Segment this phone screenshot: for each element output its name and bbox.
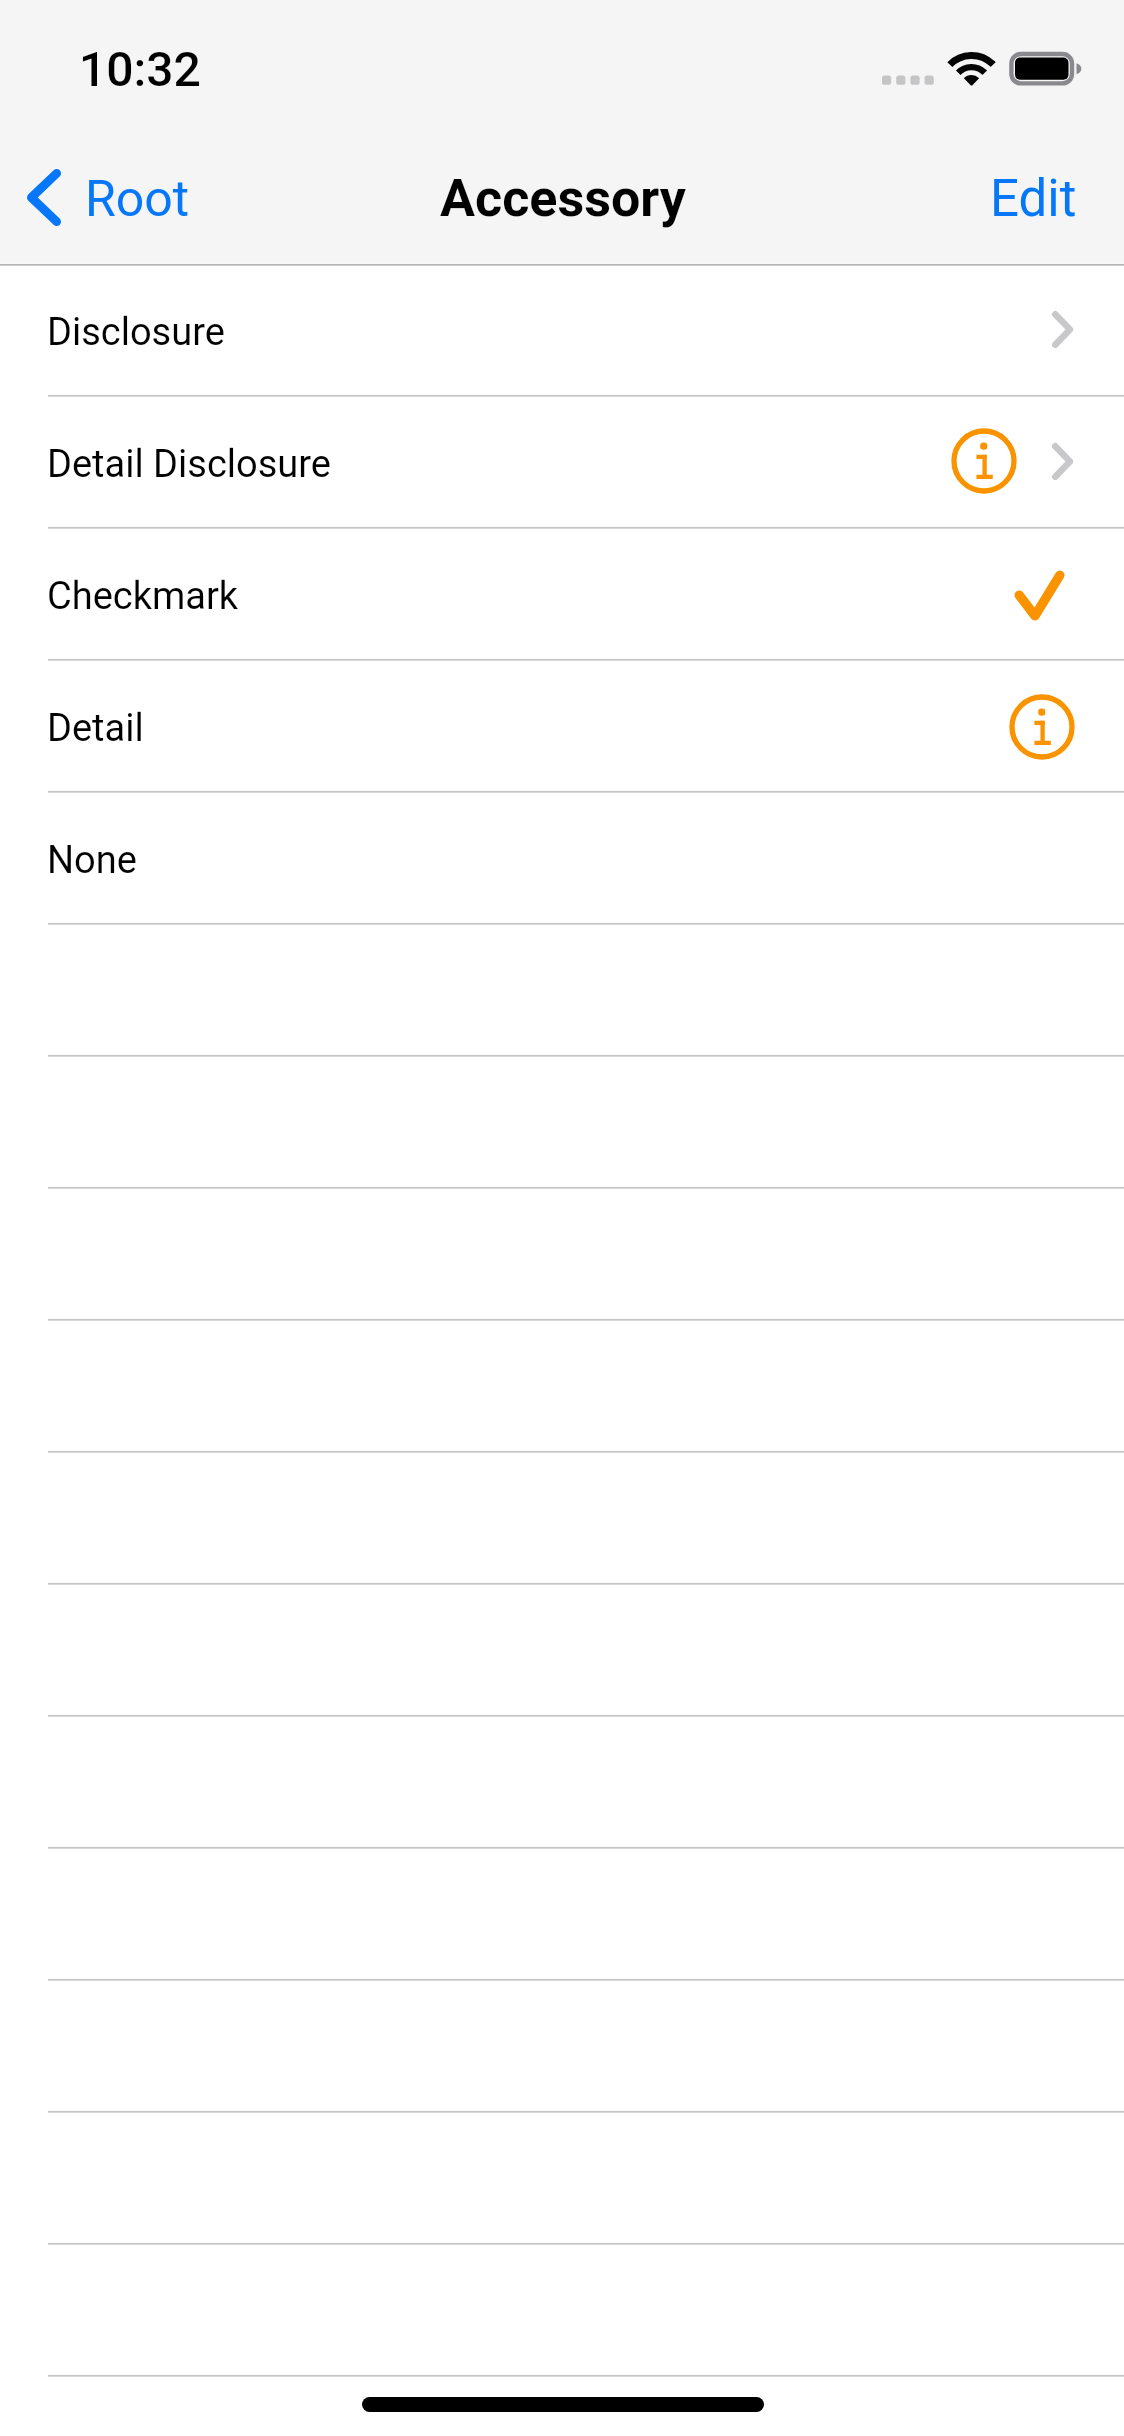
- staticText: Accessory: [440, 168, 686, 229]
- button[interactable]: Detail Disclosure: [0, 395, 1124, 527]
- button[interactable]: None: [0, 791, 1124, 923]
- staticText: Root: [85, 170, 190, 229]
- button[interactable]: More info: [951, 428, 1017, 494]
- button[interactable]: Edit: [960, 152, 1124, 244]
- button[interactable]: [0, 2111, 1124, 2243]
- button[interactable]: [0, 1979, 1124, 2111]
- button[interactable]: Checkmark: [0, 527, 1124, 659]
- button[interactable]: [0, 1187, 1124, 1319]
- button[interactable]: [0, 1319, 1124, 1451]
- staticText: 10:32: [79, 41, 201, 97]
- button[interactable]: [0, 2243, 1124, 2375]
- button[interactable]: [0, 1055, 1124, 1187]
- button[interactable]: [0, 923, 1124, 1055]
- staticText: Detail: [47, 706, 144, 751]
- staticText: Checkmark: [47, 574, 239, 619]
- button[interactable]: [0, 1715, 1124, 1847]
- button[interactable]: More info: [1009, 694, 1075, 760]
- staticText: Disclosure: [47, 310, 225, 355]
- button[interactable]: Disclosure: [0, 263, 1124, 395]
- staticText: None: [47, 838, 137, 883]
- button[interactable]: [0, 1451, 1124, 1583]
- staticText: Edit: [990, 169, 1077, 229]
- staticText: Detail Disclosure: [47, 442, 331, 487]
- button[interactable]: Detail: [0, 659, 1124, 791]
- button[interactable]: [0, 1583, 1124, 1715]
- button[interactable]: [0, 1847, 1124, 1979]
- button[interactable]: Root: [0, 154, 208, 241]
